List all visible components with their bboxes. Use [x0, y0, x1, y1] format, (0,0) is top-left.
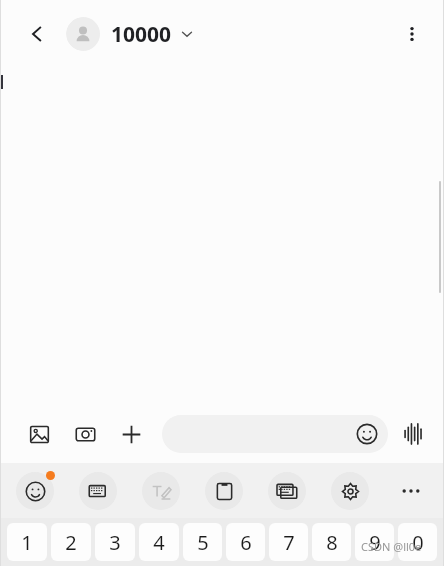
button[interactable]: 10000: [66, 17, 194, 51]
button[interactable]: 1: [7, 523, 47, 561]
staticText: 8: [326, 529, 338, 556]
button[interactable]: Emoji: [162, 415, 388, 453]
button[interactable]: Settings: [331, 472, 369, 510]
button[interactable]: 9: [355, 523, 394, 561]
staticText: 4: [153, 529, 165, 556]
button[interactable]: Handwriting: [142, 472, 180, 510]
button[interactable]: Emoji keyboard: [16, 472, 54, 510]
button[interactable]: Emoji: [352, 419, 382, 449]
staticText: 1: [21, 529, 33, 556]
button[interactable]: Keyboard: [79, 472, 117, 510]
button[interactable]: Clipboard: [205, 472, 243, 510]
button[interactable]: 4: [139, 523, 179, 561]
staticText: 3: [109, 529, 121, 556]
button[interactable]: 5: [183, 523, 222, 561]
button[interactable]: Add attachment: [114, 417, 148, 451]
button[interactable]: More options: [394, 16, 430, 52]
button[interactable]: 3: [95, 523, 135, 561]
button[interactable]: 7: [269, 523, 308, 561]
button[interactable]: 0: [398, 523, 437, 561]
button[interactable]: More: [392, 472, 430, 510]
button[interactable]: Voice message: [396, 417, 430, 451]
button[interactable]: Gallery: [22, 417, 56, 451]
button[interactable]: Camera: [68, 417, 102, 451]
staticText: CSDN @ll0e: [361, 539, 422, 554]
button[interactable]: 6: [226, 523, 265, 561]
button[interactable]: 8: [312, 523, 351, 561]
staticText: 7: [283, 529, 295, 556]
staticText: 2: [65, 529, 77, 556]
staticText: 9: [369, 529, 381, 556]
button[interactable]: 2: [51, 523, 91, 561]
button[interactable]: Back: [20, 17, 54, 51]
staticText: 0: [412, 529, 424, 556]
button[interactable]: Floating keyboard: [268, 472, 306, 510]
staticText: 10000: [111, 20, 172, 49]
staticText: 5: [197, 529, 209, 556]
staticText: 6: [240, 529, 252, 556]
